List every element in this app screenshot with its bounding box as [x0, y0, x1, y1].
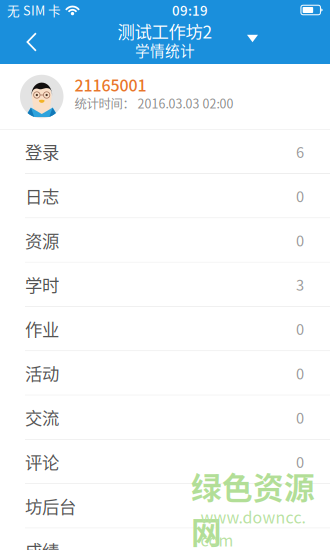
staticText: www.downcc.com [200, 505, 305, 550]
staticText: 09:19 [172, 0, 208, 20]
button[interactable]: 成绩 [0, 528, 330, 550]
staticText: 0 [296, 362, 304, 384]
staticText: 0 [296, 185, 304, 206]
button[interactable]: 活动 [0, 351, 330, 395]
button[interactable]: 登录 [0, 130, 330, 174]
staticText: 6 [296, 141, 304, 162]
staticText: 0 [296, 451, 304, 472]
button[interactable]: Back [0, 20, 53, 64]
staticText: 3 [296, 274, 304, 295]
button[interactable]: 学时 [0, 263, 330, 307]
staticText: 测试工作坊2 [117, 18, 212, 44]
staticText: 无 SIM 卡 [7, 1, 61, 19]
button[interactable]: 作业 [0, 307, 330, 351]
staticText: 绿色资源网 [191, 464, 315, 550]
button[interactable]: 21165001 [0, 64, 330, 129]
staticText: 学时 [25, 272, 59, 297]
staticText: 登录 [25, 139, 59, 164]
staticText: 交流 [25, 405, 59, 430]
staticText: 21165001 [74, 73, 146, 96]
staticText: 0 [296, 229, 304, 251]
button[interactable]: 日志 [0, 174, 330, 218]
button[interactable]: 交流 [0, 395, 330, 440]
staticText: 评论 [25, 449, 59, 474]
staticText: 0 [296, 407, 304, 428]
staticText: 坊后台 [25, 493, 76, 518]
staticText: 作业 [25, 316, 59, 341]
button[interactable]: 资源 [0, 218, 330, 263]
staticText: 活动 [25, 360, 59, 386]
staticText: 资源 [25, 228, 59, 253]
button[interactable]: 坊后台 [0, 484, 330, 528]
staticText: 学情统计 [135, 39, 195, 61]
button[interactable]: Switch workshop [231, 21, 274, 63]
staticText: 0 [296, 318, 304, 339]
button[interactable]: 评论 [0, 440, 330, 484]
staticText: 日志 [25, 183, 59, 208]
staticText: 成绩 [25, 538, 59, 550]
staticText: 统计时间： 2016.03.03 02:00 [74, 94, 233, 112]
